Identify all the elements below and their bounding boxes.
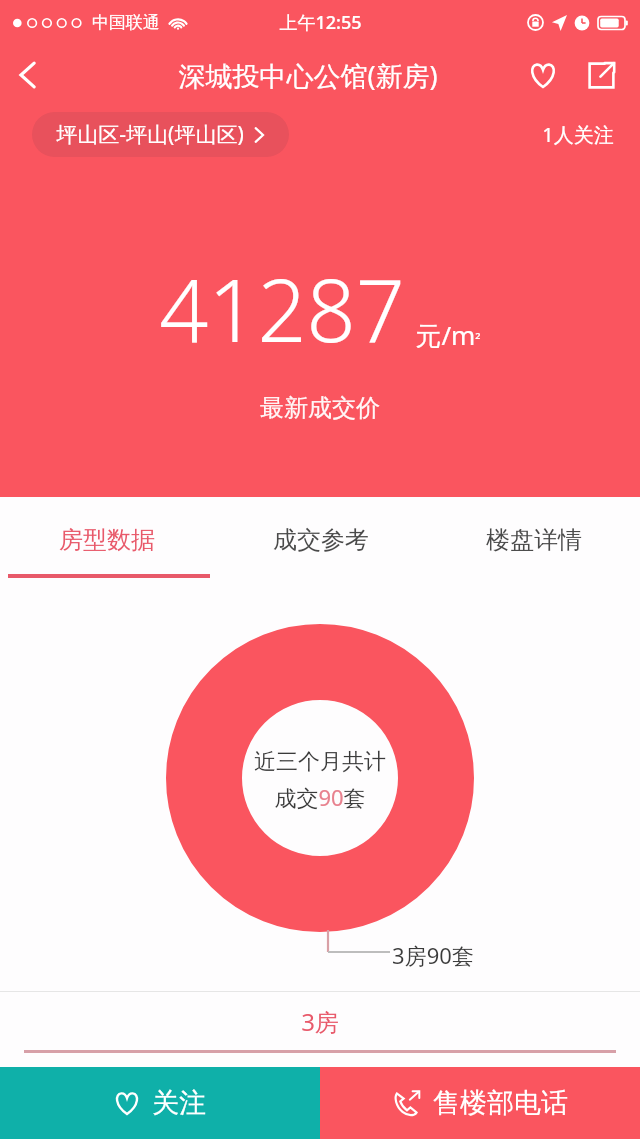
button[interactable]: 售楼部电话 (320, 1067, 640, 1139)
staticText: 楼盘详情 (486, 525, 582, 555)
staticText: 1人关注 (542, 121, 614, 148)
button[interactable]: 3房 (0, 992, 640, 1050)
button[interactable]: Back (0, 47, 56, 103)
staticText: 元/m² (415, 317, 481, 353)
staticText: 关注 (152, 1086, 206, 1120)
button[interactable]: 关注 (0, 1067, 320, 1139)
button[interactable]: 楼盘详情 (427, 497, 640, 582)
staticText: 售楼部电话 (433, 1086, 568, 1120)
button[interactable]: 成交参考 (214, 497, 427, 582)
staticText: 中国联通 (92, 12, 160, 33)
staticText: 上午12:55 (279, 10, 362, 35)
staticText: 3房 (301, 1005, 339, 1038)
button[interactable]: Favorite (518, 50, 568, 100)
button[interactable]: 1人关注 (542, 121, 614, 148)
button[interactable]: 房型数据 (0, 497, 214, 582)
staticText: 坪山区-坪山(坪山区) (56, 120, 244, 149)
staticText: 房型数据 (59, 525, 155, 555)
button[interactable]: Share (576, 50, 626, 100)
staticText: 成交参考 (273, 525, 369, 555)
staticText: 3房90套 (392, 940, 474, 970)
staticText: 41287 (159, 250, 405, 367)
staticText: 近三个月共计 (254, 748, 386, 776)
button[interactable]: 坪山区-坪山(坪山区) (32, 112, 289, 157)
staticText: 深城投中心公馆(新房) (178, 57, 438, 94)
staticText: 成交90套 (274, 782, 366, 812)
staticText: 最新成交价 (260, 393, 380, 423)
